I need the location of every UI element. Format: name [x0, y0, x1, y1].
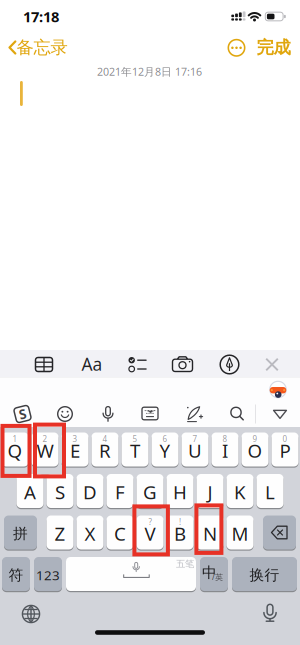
- button[interactable]: M: [226, 516, 253, 550]
- button[interactable]: O: [241, 433, 268, 467]
- staticText: 6: [162, 434, 167, 444]
- button[interactable]: J: [196, 475, 223, 509]
- button[interactable]: G: [136, 475, 163, 509]
- button[interactable]: [16, 599, 46, 629]
- button[interactable]: Aa: [81, 352, 102, 375]
- button[interactable]: S: [46, 475, 73, 509]
- button[interactable]: K: [226, 475, 253, 509]
- button[interactable]: B: [166, 516, 193, 550]
- button[interactable]: N: [196, 516, 223, 550]
- button[interactable]: X: [76, 516, 103, 550]
- button[interactable]: S: [13, 405, 31, 423]
- staticText: S: [19, 405, 26, 423]
- staticText: M: [231, 521, 248, 546]
- staticText: G: [143, 480, 157, 504]
- button[interactable]: [95, 401, 121, 427]
- button[interactable]: U: [181, 433, 208, 467]
- button[interactable]: 拼: [4, 516, 37, 550]
- button[interactable]: 完成: [255, 35, 291, 59]
- staticText: S: [55, 480, 65, 504]
- staticText: V: [144, 521, 155, 546]
- staticText: 3: [72, 434, 77, 444]
- button[interactable]: 符: [2, 558, 30, 592]
- button[interactable]: I: [211, 433, 238, 467]
- button[interactable]: [52, 401, 78, 427]
- staticText: Q: [7, 438, 22, 463]
- button[interactable]: [4, 34, 68, 60]
- staticText: 完成: [256, 37, 290, 58]
- button[interactable]: [260, 352, 284, 376]
- staticText: R: [99, 438, 111, 463]
- button[interactable]: [169, 352, 195, 376]
- staticText: 17:18: [23, 7, 59, 26]
- button[interactable]: W: [31, 433, 58, 467]
- button[interactable]: 换行: [232, 558, 297, 592]
- staticText: 换行: [249, 566, 279, 584]
- button[interactable]: [263, 515, 296, 549]
- staticText: !: [179, 517, 181, 527]
- staticText: Aa: [81, 352, 102, 375]
- staticText: 拼: [13, 524, 28, 542]
- staticText: U: [188, 438, 202, 463]
- button[interactable]: T: [121, 433, 148, 467]
- button[interactable]: [181, 401, 207, 427]
- staticText: 0: [282, 434, 287, 444]
- staticText: 8: [222, 434, 227, 444]
- staticText: 2: [42, 434, 47, 444]
- button[interactable]: [217, 352, 241, 376]
- button[interactable]: A: [16, 475, 43, 509]
- button[interactable]: D: [76, 475, 103, 509]
- staticText: N: [203, 521, 217, 546]
- staticText: D: [83, 480, 97, 504]
- staticText: ?: [148, 517, 151, 527]
- button[interactable]: 123: [34, 558, 62, 592]
- staticText: I: [222, 438, 228, 463]
- button[interactable]: R: [91, 433, 118, 467]
- button[interactable]: C: [106, 516, 133, 550]
- staticText: 123: [36, 566, 60, 584]
- staticText: L: [265, 480, 275, 504]
- staticText: 符: [8, 566, 23, 584]
- button[interactable]: [137, 400, 163, 426]
- button[interactable]: [200, 557, 228, 591]
- button[interactable]: V: [136, 516, 163, 550]
- staticText: 五笔: [176, 558, 194, 570]
- button[interactable]: [226, 38, 246, 58]
- staticText: X: [84, 521, 95, 546]
- staticText: C: [114, 521, 126, 546]
- button[interactable]: E: [61, 433, 88, 467]
- button[interactable]: F: [106, 475, 133, 509]
- staticText: 1: [12, 434, 17, 444]
- staticText: H: [173, 480, 187, 504]
- staticText: 备忘录: [16, 37, 67, 58]
- button[interactable]: L: [256, 475, 283, 509]
- staticText: E: [70, 438, 80, 463]
- staticText: 5: [132, 434, 137, 444]
- staticText: 2021年12月8日 17:16: [97, 64, 202, 79]
- button[interactable]: [255, 598, 285, 628]
- button[interactable]: [66, 557, 196, 591]
- button[interactable]: P: [271, 433, 298, 467]
- staticText: 中: [202, 563, 217, 581]
- button[interactable]: [224, 401, 250, 427]
- staticText: W: [36, 438, 53, 463]
- staticText: K: [234, 480, 246, 504]
- button[interactable]: H: [166, 475, 193, 509]
- button[interactable]: Y: [151, 433, 178, 467]
- staticText: J: [207, 480, 212, 504]
- staticText: A: [24, 480, 36, 504]
- staticText: T: [130, 438, 140, 463]
- staticText: Z: [54, 521, 65, 546]
- button[interactable]: [267, 401, 293, 427]
- button[interactable]: [32, 352, 56, 376]
- button[interactable]: Z: [46, 516, 73, 550]
- staticText: O: [247, 438, 262, 463]
- button[interactable]: Q: [1, 433, 28, 467]
- staticText: /英: [212, 572, 223, 582]
- staticText: Y: [159, 438, 170, 463]
- staticText: 4: [102, 434, 107, 444]
- staticText: 9: [252, 434, 257, 444]
- button[interactable]: [124, 352, 148, 376]
- staticText: 7: [192, 434, 197, 444]
- staticText: F: [115, 480, 125, 504]
